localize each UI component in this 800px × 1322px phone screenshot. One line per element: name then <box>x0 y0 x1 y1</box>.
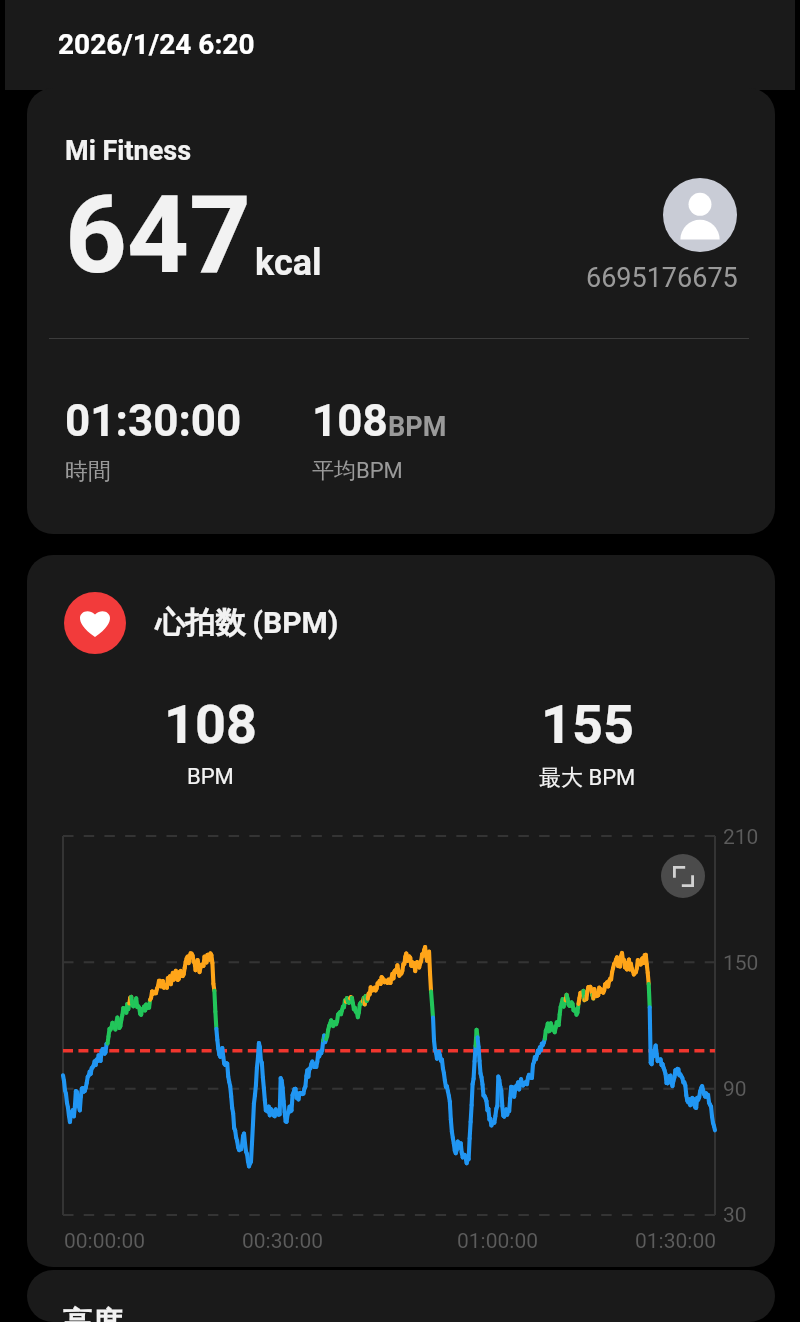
staticText: kcal <box>255 242 322 284</box>
staticText: 647 <box>65 172 251 299</box>
staticText: Mi Fitness <box>65 135 192 167</box>
staticText: 最大 BPM <box>539 764 636 792</box>
staticText: BPM <box>187 764 234 790</box>
button[interactable]: Mi Fitness <box>27 88 775 534</box>
staticText: 00:00:00 <box>64 1229 145 1254</box>
staticText: 心拍数 (BPM) <box>155 604 339 642</box>
staticText: 01:30:00 <box>635 1229 716 1254</box>
staticText: 01:00:00 <box>457 1229 538 1254</box>
button[interactable]: Expand chart <box>661 854 705 898</box>
staticText: 155 <box>541 693 634 756</box>
staticText: 00:30:00 <box>242 1229 323 1254</box>
staticText: 01:30:00 <box>65 395 242 447</box>
button[interactable]: 高度 <box>27 1270 775 1322</box>
button[interactable]: Profile <box>663 178 737 252</box>
staticText: 30 <box>723 1203 747 1228</box>
staticText: 108 <box>164 693 257 756</box>
staticText: 108 <box>312 395 388 447</box>
staticText: 時間 <box>65 457 111 486</box>
staticText: 平均BPM <box>312 457 403 485</box>
staticText: 150 <box>723 951 759 976</box>
staticText: 90 <box>723 1077 747 1102</box>
staticText: 6695176675 <box>586 262 738 294</box>
staticText: 高度 <box>62 1304 122 1322</box>
staticText: 210 <box>723 825 759 850</box>
staticText: 2026/1/24 6:20 <box>58 28 255 61</box>
staticText: BPM <box>388 411 447 443</box>
